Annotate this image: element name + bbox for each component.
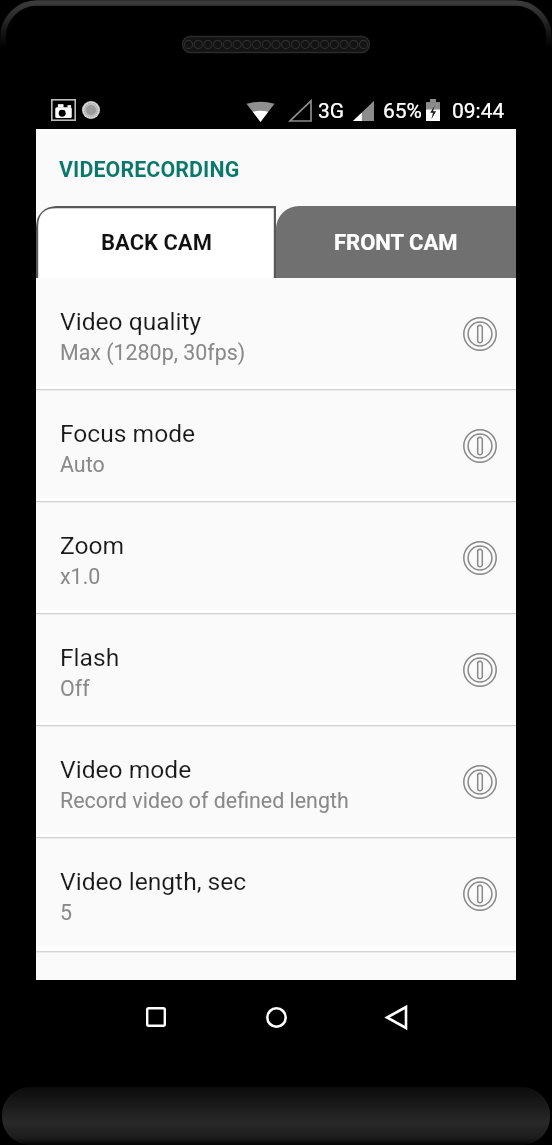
staticText: Off [60, 676, 90, 701]
button[interactable]: Recent apps [128, 989, 184, 1045]
button[interactable]: Info about Focus mode [452, 418, 508, 474]
staticText: BACK CAM [101, 230, 212, 256]
staticText: 3G [318, 99, 345, 124]
staticText: Video mode [60, 755, 192, 784]
button[interactable]: Video mode [36, 726, 516, 837]
staticText: 5 [60, 900, 73, 925]
staticText: 65% [383, 99, 422, 124]
staticText: Zoom [60, 531, 125, 560]
button[interactable]: Focus mode [36, 390, 516, 501]
staticText: Auto [60, 452, 105, 477]
button[interactable]: Flash [36, 614, 516, 725]
staticText: FRONT CAM [334, 230, 458, 256]
button[interactable]: Info about Video quality [452, 306, 508, 362]
staticText: Max (1280p, 30fps) [60, 340, 246, 365]
staticText: Focus mode [60, 419, 196, 448]
staticText: Record video of defined length [60, 788, 349, 813]
button[interactable]: Video quality [36, 278, 516, 389]
button[interactable]: Info about Video mode [452, 754, 508, 810]
button[interactable]: Info about Zoom [452, 530, 508, 586]
button[interactable]: FRONT CAM [276, 206, 516, 278]
staticText: x1.0 [60, 564, 101, 589]
button[interactable]: Zoom [36, 502, 516, 613]
button[interactable]: Back [368, 989, 424, 1045]
staticText: Video length, sec [60, 867, 247, 896]
button[interactable]: BACK CAM [36, 206, 276, 278]
button[interactable]: Info about Flash [452, 642, 508, 698]
button[interactable]: Info about Video length, sec [452, 866, 508, 922]
button[interactable]: Home [248, 989, 304, 1045]
staticText: Flash [60, 643, 120, 672]
button[interactable]: Video length, sec [36, 838, 516, 949]
staticText: Video quality [60, 307, 202, 336]
staticText: 09:44 [452, 99, 505, 124]
staticText: VIDEORECORDING [59, 157, 240, 182]
